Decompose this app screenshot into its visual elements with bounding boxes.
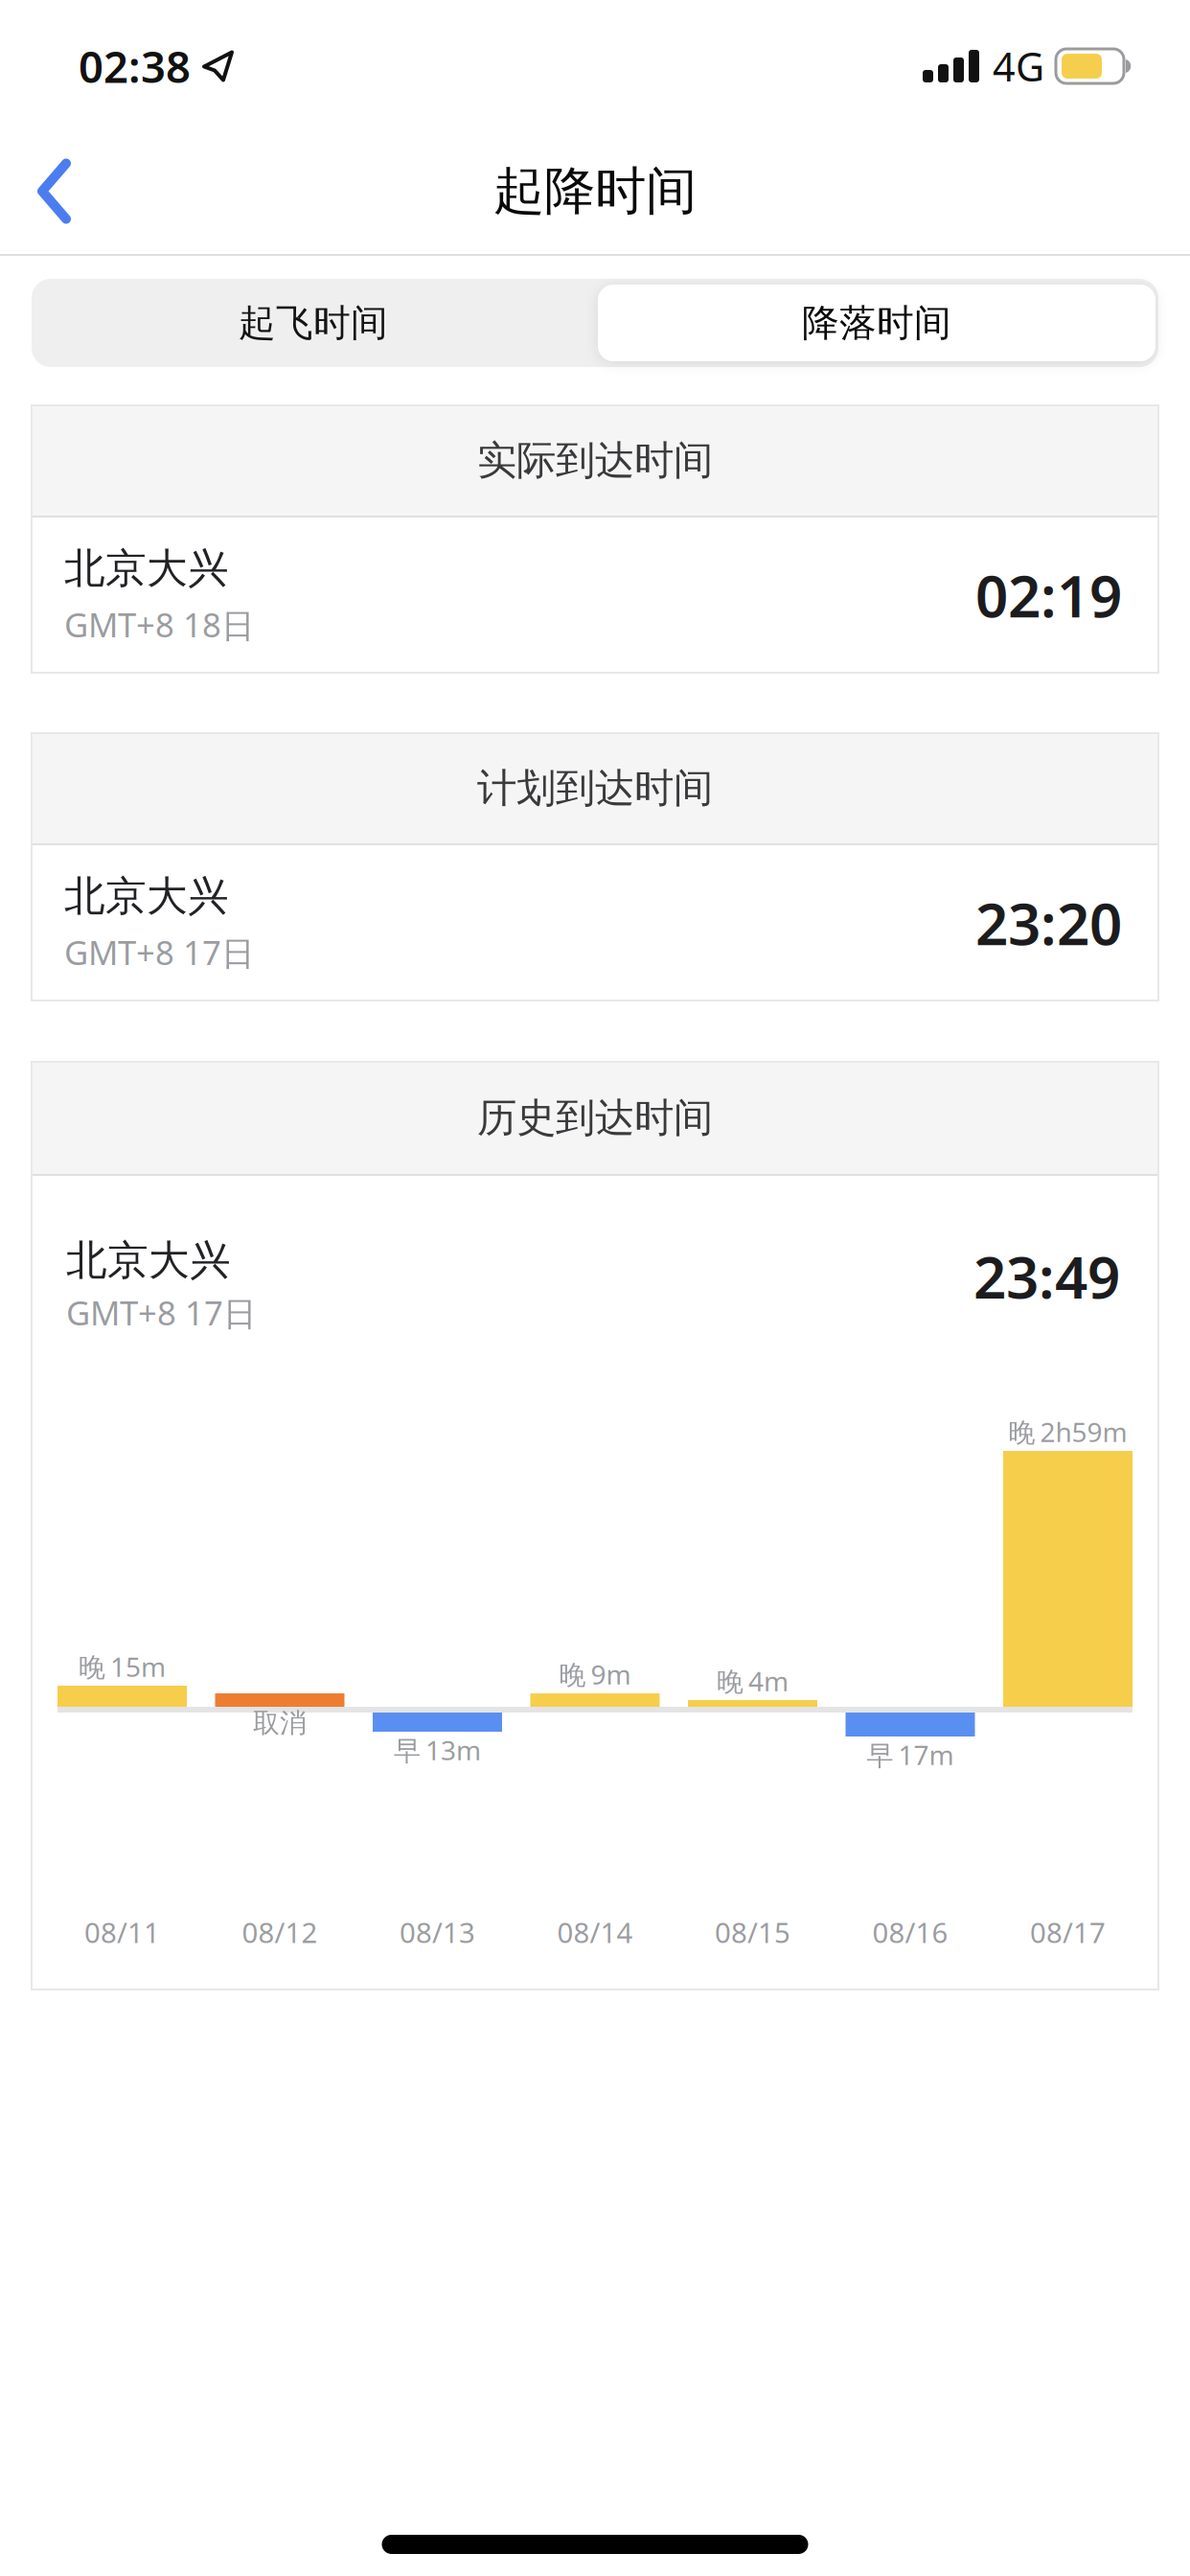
staticText: 晚 15m (79, 1649, 166, 1684)
staticText: GMT+8 18日 (64, 602, 255, 647)
staticText: 早 17m (867, 1737, 954, 1773)
staticText: 晚 2h59m (1008, 1414, 1127, 1450)
staticText: 计划到达时间 (477, 764, 713, 813)
staticText: 08/16 (872, 1913, 948, 1951)
staticText: 4G (993, 40, 1044, 92)
button[interactable]: 降落时间 (595, 279, 1158, 367)
staticText: 北京大兴 (64, 544, 229, 594)
staticText: 北京大兴 (66, 1235, 231, 1286)
staticText: 02:38 (79, 37, 191, 95)
staticText: 08/11 (84, 1913, 160, 1951)
staticText: 08/13 (400, 1913, 475, 1951)
staticText: 降落时间 (802, 300, 951, 346)
staticText: GMT+8 17日 (66, 1290, 257, 1335)
staticText: 08/12 (242, 1913, 318, 1951)
staticText: 23:20 (975, 885, 1122, 961)
button[interactable] (0, 159, 72, 224)
staticText: GMT+8 17日 (64, 930, 255, 974)
staticText: 02:19 (975, 557, 1122, 633)
staticText: 08/14 (557, 1913, 633, 1951)
staticText: 起降时间 (493, 160, 697, 223)
staticText: 晚 4m (717, 1663, 789, 1699)
staticText: 早 13m (394, 1732, 481, 1768)
staticText: 取消 (253, 1707, 307, 1740)
staticText: 晚 9m (559, 1656, 631, 1692)
button[interactable]: 起飞时间 (32, 279, 595, 367)
staticText: 实际到达时间 (477, 436, 713, 485)
staticText: 北京大兴 (64, 871, 229, 922)
staticText: 23:49 (973, 1238, 1120, 1315)
staticText: 起飞时间 (239, 300, 388, 346)
staticText: 08/17 (1030, 1913, 1106, 1951)
staticText: 08/15 (715, 1913, 790, 1951)
staticText: 历史到达时间 (477, 1094, 713, 1142)
